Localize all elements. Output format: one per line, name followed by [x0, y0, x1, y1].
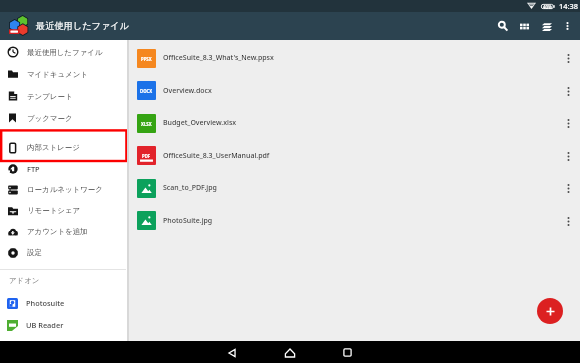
staticText: 設定 — [27, 248, 42, 257]
staticText: ローカルネットワーク — [27, 185, 103, 194]
button[interactable]: File options — [558, 211, 578, 231]
button[interactable]: ローカルネットワーク — [0, 179, 129, 200]
button[interactable]: 内部ストレージ — [0, 137, 129, 158]
button[interactable]: Search — [498, 14, 508, 38]
staticText: 最近使用したファイル — [36, 20, 130, 32]
staticText: PhotoSuite.jpg — [163, 216, 213, 226]
button[interactable]: Add — [537, 298, 563, 324]
button[interactable]: Home — [277, 342, 303, 363]
button[interactable]: マイドキュメント — [0, 63, 129, 85]
button[interactable]: アカウントを追加 — [0, 221, 129, 242]
button[interactable]: PPSX — [129, 42, 580, 74]
button[interactable]: File options — [558, 81, 578, 101]
staticText: 内部ストレージ — [27, 143, 80, 152]
staticText: FTP — [27, 164, 40, 174]
staticText: リモートシェア — [27, 206, 81, 215]
button[interactable]: More options — [561, 14, 574, 38]
staticText: アカウントを追加 — [27, 227, 88, 236]
button[interactable]: リモートシェア — [0, 200, 129, 221]
button[interactable]: 設定 — [0, 242, 129, 263]
button[interactable]: ブックマーク — [0, 107, 129, 129]
button[interactable]: FTP — [0, 158, 129, 179]
staticText: Scan_to_PDF.jpg — [163, 183, 217, 193]
button[interactable]: Back — [219, 342, 245, 363]
staticText: XLSX — [141, 121, 152, 127]
staticText: PPSX — [141, 56, 152, 62]
staticText: 14:38 — [559, 1, 578, 11]
button[interactable]: File options — [558, 178, 578, 198]
staticText: ブックマーク — [27, 114, 73, 123]
button[interactable]: DOCX — [129, 74, 580, 107]
staticText: PDF — [142, 153, 151, 159]
button[interactable]: PDF — [129, 139, 580, 172]
button[interactable]: Recents — [334, 342, 360, 363]
button[interactable]: PhotoSuite.jpg — [129, 204, 580, 237]
staticText: Overview.docx — [163, 86, 212, 96]
staticText: OfficeSuite_8.3_What's_New.ppsx — [163, 53, 274, 63]
button[interactable]: 最近使用したファイル — [0, 41, 129, 63]
button[interactable]: Sort — [542, 14, 552, 38]
staticText: DOCX — [140, 88, 153, 94]
staticText: 40% — [543, 4, 552, 9]
button[interactable]: Photosuite — [0, 292, 129, 314]
staticText: アドオン — [9, 276, 40, 285]
button[interactable]: Scan_to_PDF.jpg — [129, 172, 580, 204]
staticText: Photosuite — [26, 298, 65, 308]
button[interactable]: テンプレート — [0, 85, 129, 107]
staticText: テンプレート — [27, 92, 73, 101]
staticText: Budget_Overview.xlsx — [163, 118, 237, 128]
staticText: UB Reader — [26, 320, 64, 330]
button[interactable]: File options — [558, 146, 578, 166]
button[interactable]: File options — [558, 113, 578, 133]
staticText: 最近使用したファイル — [27, 48, 103, 57]
staticText: マイドキュメント — [27, 70, 88, 79]
button[interactable]: Grid view — [520, 14, 529, 38]
staticText: OfficeSuite_8.3_UserManual.pdf — [163, 151, 270, 161]
button[interactable]: XLSX — [129, 107, 580, 139]
button[interactable]: File options — [558, 48, 578, 68]
button[interactable]: UB Reader — [0, 314, 129, 336]
